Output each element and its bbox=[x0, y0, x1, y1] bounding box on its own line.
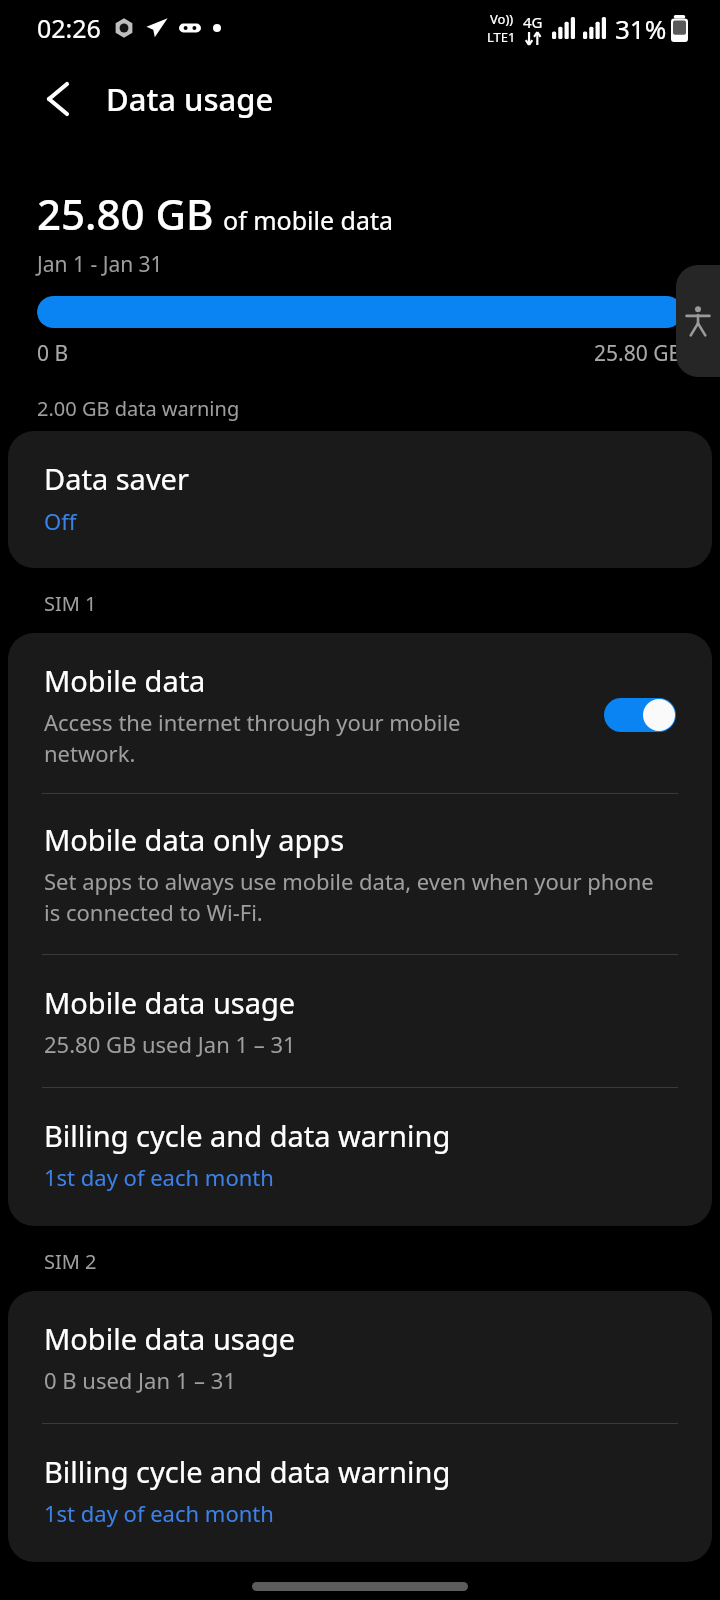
staticText: SIM 1 bbox=[44, 590, 97, 617]
staticText: Data saver bbox=[44, 459, 189, 498]
staticText: 02:26 bbox=[37, 11, 101, 45]
button[interactable]: Mobile data toggle bbox=[604, 698, 676, 732]
staticText: 31% bbox=[615, 11, 667, 46]
staticText: 25.80 GB used Jan 1 – 31 bbox=[44, 1029, 296, 1059]
staticText: 0 B bbox=[37, 339, 69, 368]
staticText: 4G bbox=[523, 12, 543, 32]
button[interactable]: Mobile data only apps bbox=[8, 794, 712, 954]
staticText: Mobile data usage bbox=[44, 1319, 296, 1358]
staticText: 25.80 GB bbox=[37, 185, 214, 242]
button[interactable]: Data saver bbox=[8, 431, 712, 568]
staticText: 0 B used Jan 1 – 31 bbox=[44, 1365, 236, 1395]
staticText: LTE1 bbox=[487, 28, 516, 46]
staticText: Mobile data bbox=[44, 661, 206, 700]
staticText: Vo)) bbox=[490, 10, 514, 28]
button[interactable]: Mobile data bbox=[8, 633, 712, 793]
button[interactable]: Back bbox=[32, 73, 84, 125]
staticText: Mobile data only apps bbox=[44, 820, 345, 859]
staticText: 1st day of each month bbox=[44, 1162, 274, 1192]
staticText: of mobile data bbox=[223, 203, 394, 237]
button[interactable]: Billing cycle and data warning bbox=[8, 1088, 712, 1226]
staticText: Access the internet through your mobile … bbox=[44, 707, 461, 769]
staticText: 1st day of each month bbox=[44, 1498, 274, 1528]
staticText: SIM 2 bbox=[44, 1248, 97, 1275]
staticText: 25.80 GB bbox=[594, 339, 683, 368]
button[interactable]: Accessibility bbox=[676, 265, 720, 377]
staticText: Data usage bbox=[106, 78, 274, 120]
staticText: Jan 1 - Jan 31 bbox=[37, 250, 163, 279]
staticText: Mobile data usage bbox=[44, 983, 296, 1022]
staticText: Billing cycle and data warning bbox=[44, 1116, 451, 1155]
staticText: Billing cycle and data warning bbox=[44, 1452, 451, 1491]
staticText: 2.00 GB data warning bbox=[37, 395, 240, 422]
button[interactable]: Mobile data usage bbox=[8, 955, 712, 1087]
staticText: Set apps to always use mobile data, even… bbox=[44, 866, 654, 928]
button[interactable]: Mobile data usage bbox=[8, 1291, 712, 1423]
button[interactable]: Billing cycle and data warning bbox=[8, 1424, 712, 1562]
staticText: Off bbox=[44, 506, 77, 536]
